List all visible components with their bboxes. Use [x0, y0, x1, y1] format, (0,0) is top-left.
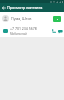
- button[interactable]: Back: [0, 4, 7, 11]
- button[interactable]: Call: [51, 28, 56, 34]
- staticText: +7 701 234 5678: [10, 26, 37, 31]
- staticText: Просмотр контакта: [7, 5, 43, 10]
- button[interactable]: Message: [57, 28, 63, 34]
- button[interactable]: Add contact: [53, 16, 61, 22]
- staticText: Пума, Шток: [11, 16, 32, 21]
- button[interactable]: +7 701 234 5678: [0, 25, 64, 37]
- staticText: Мобильный: [10, 32, 27, 36]
- button[interactable]: Пума, Шток: [0, 12, 64, 25]
